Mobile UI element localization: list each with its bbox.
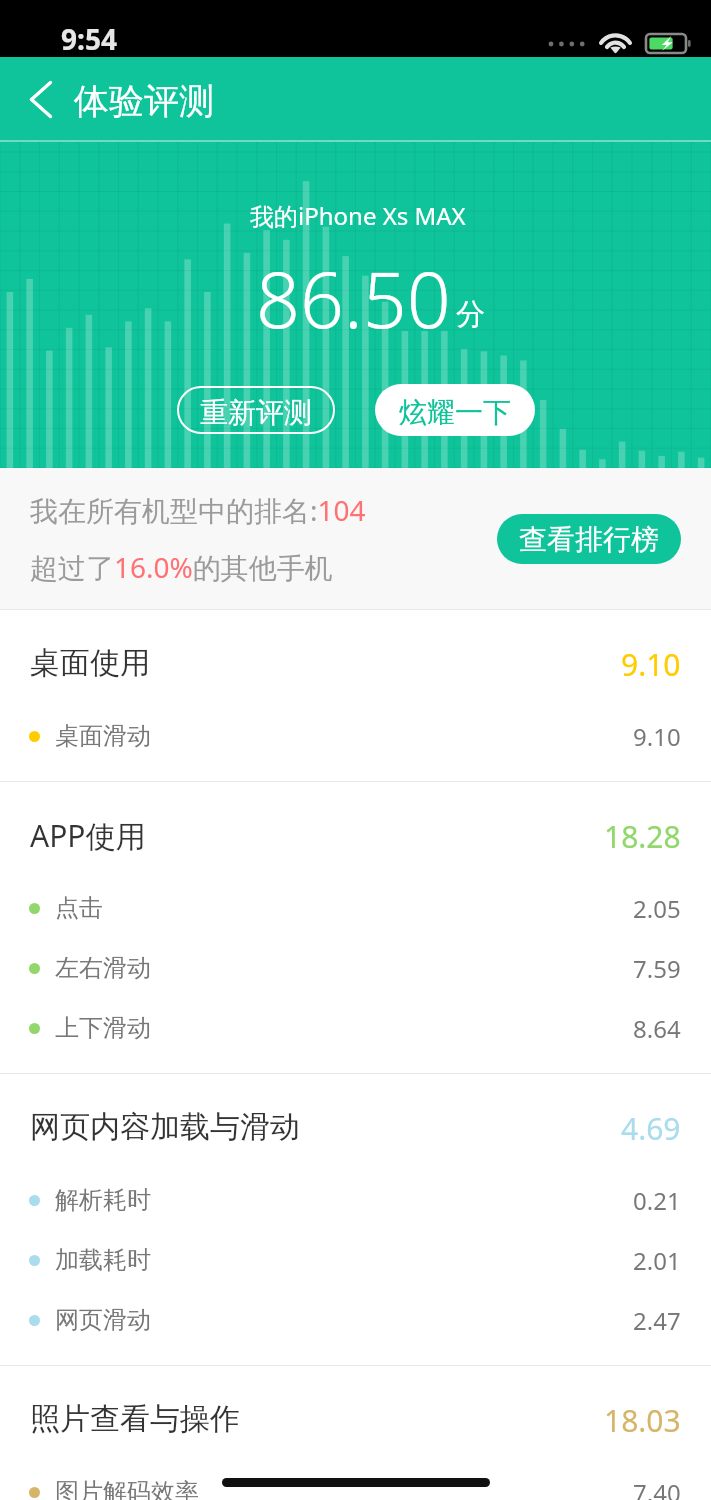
- staticText: 上下滑动: [55, 1013, 151, 1043]
- staticText: 解析耗时: [55, 1185, 151, 1215]
- staticText: 体验评测: [74, 79, 214, 123]
- staticText: 点击: [55, 893, 103, 923]
- button[interactable]: 重新评测: [177, 386, 335, 434]
- staticText: 8.64: [633, 1012, 681, 1045]
- staticText: 网页滑动: [55, 1305, 151, 1335]
- button[interactable]: 网页内容加载与滑动: [0, 1074, 711, 1170]
- staticText: 9.10: [621, 644, 681, 685]
- staticText: 照片查看与操作: [30, 1400, 240, 1438]
- staticText: 86.50: [256, 246, 451, 351]
- staticText: 网页内容加载与滑动: [30, 1108, 300, 1146]
- staticText: 7.59: [633, 952, 681, 985]
- button[interactable]: 上下滑动: [0, 998, 711, 1058]
- staticText: 18.03: [604, 1400, 681, 1441]
- button[interactable]: 左右滑动: [0, 938, 711, 998]
- staticText: 7.40: [633, 1476, 681, 1500]
- button[interactable]: 点击: [0, 878, 711, 938]
- staticText: 图片解码效率: [55, 1477, 199, 1500]
- staticText: 查看排行榜: [519, 522, 659, 557]
- button[interactable]: Back: [13, 71, 69, 127]
- button[interactable]: 解析耗时: [0, 1170, 711, 1230]
- button[interactable]: APP使用: [0, 782, 711, 878]
- staticText: 18.28: [604, 816, 681, 857]
- staticText: 左右滑动: [55, 953, 151, 983]
- staticText: 炫耀一下: [399, 395, 511, 430]
- staticText: 9:54: [61, 20, 117, 57]
- button[interactable]: 照片查看与操作: [0, 1366, 711, 1462]
- staticText: 2.05: [633, 892, 681, 925]
- button[interactable]: 加载耗时: [0, 1230, 711, 1290]
- staticText: 超过了16.0%的其他手机: [30, 548, 333, 586]
- button[interactable]: 桌面使用: [0, 610, 711, 706]
- button[interactable]: 炫耀一下: [375, 384, 535, 436]
- staticText: 9.10: [633, 720, 681, 753]
- staticText: 分: [456, 296, 485, 333]
- staticText: 桌面使用: [30, 644, 150, 682]
- button[interactable]: 桌面滑动: [0, 706, 711, 766]
- staticText: 桌面滑动: [55, 721, 151, 751]
- staticText: 我的iPhone Xs MAX: [250, 199, 466, 232]
- button[interactable]: 网页滑动: [0, 1290, 711, 1350]
- staticText: 2.01: [633, 1244, 681, 1277]
- staticText: 4.69: [621, 1108, 681, 1149]
- staticText: APP使用: [30, 815, 146, 856]
- button[interactable]: 查看排行榜: [497, 514, 681, 564]
- staticText: 2.47: [633, 1304, 681, 1337]
- button[interactable]: 图片解码效率: [0, 1462, 711, 1500]
- staticText: 重新评测: [200, 395, 312, 430]
- staticText: 我在所有机型中的排名:104: [30, 491, 366, 529]
- staticText: 0.21: [633, 1184, 681, 1217]
- staticText: 加载耗时: [55, 1245, 151, 1275]
